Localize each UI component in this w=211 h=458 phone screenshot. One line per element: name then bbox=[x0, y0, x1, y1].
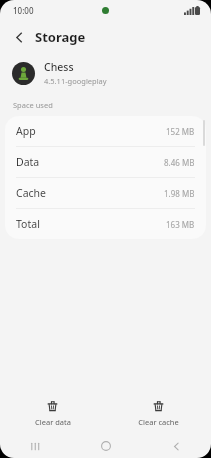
staticText: Cache bbox=[16, 186, 46, 200]
staticText: Clear cache bbox=[138, 417, 179, 427]
button[interactable]: Back bbox=[6, 24, 32, 50]
button[interactable]: Total bbox=[5, 209, 206, 239]
button[interactable]: Cache bbox=[5, 178, 206, 209]
staticText: Data bbox=[16, 155, 40, 169]
button[interactable]: App bbox=[5, 116, 206, 147]
button[interactable]: Recent apps bbox=[0, 434, 71, 458]
button[interactable]: Data bbox=[5, 147, 206, 178]
button[interactable]: Back bbox=[141, 434, 211, 458]
button[interactable]: Home bbox=[71, 434, 141, 458]
button[interactable]: Clear data bbox=[0, 400, 105, 427]
staticText: 1.98 MB bbox=[164, 188, 195, 199]
staticText: Total bbox=[16, 217, 40, 231]
button[interactable]: Clear cache bbox=[105, 400, 211, 427]
staticText: Storage bbox=[35, 28, 86, 46]
staticText: 10:00 bbox=[13, 5, 34, 16]
staticText: 8.46 MB bbox=[164, 157, 195, 168]
staticText: App bbox=[16, 124, 36, 138]
staticText: 163 MB bbox=[166, 219, 195, 230]
staticText: 4.5.11-googleplay bbox=[44, 76, 107, 86]
staticText: Chess bbox=[44, 60, 74, 74]
staticText: Space used bbox=[13, 100, 53, 110]
staticText: Clear data bbox=[35, 417, 71, 427]
staticText: 152 MB bbox=[166, 126, 195, 137]
